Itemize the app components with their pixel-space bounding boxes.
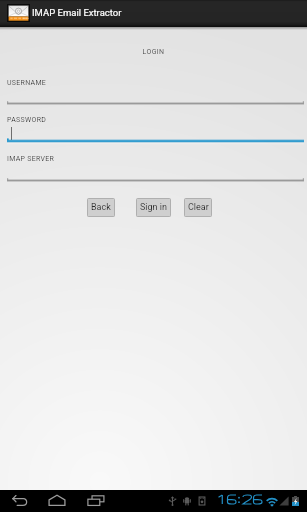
button[interactable]: Sign in (136, 198, 171, 217)
button[interactable]: Recent apps (87, 494, 105, 507)
staticText: USERNAME (7, 79, 47, 87)
button[interactable]: Back (87, 198, 115, 217)
staticText: Back (91, 202, 111, 213)
button[interactable]: Back (10, 494, 28, 507)
staticText: Sign in (140, 202, 167, 213)
button[interactable]: Home (48, 494, 66, 507)
staticText: Clear (188, 202, 209, 213)
button[interactable]: Clear (184, 198, 212, 217)
staticText: PASSWORD (7, 116, 47, 124)
staticText: IMAP SERVER (7, 155, 55, 163)
staticText: LOGIN (0, 48, 307, 56)
staticText: IMAP Email Extractor (32, 7, 122, 18)
